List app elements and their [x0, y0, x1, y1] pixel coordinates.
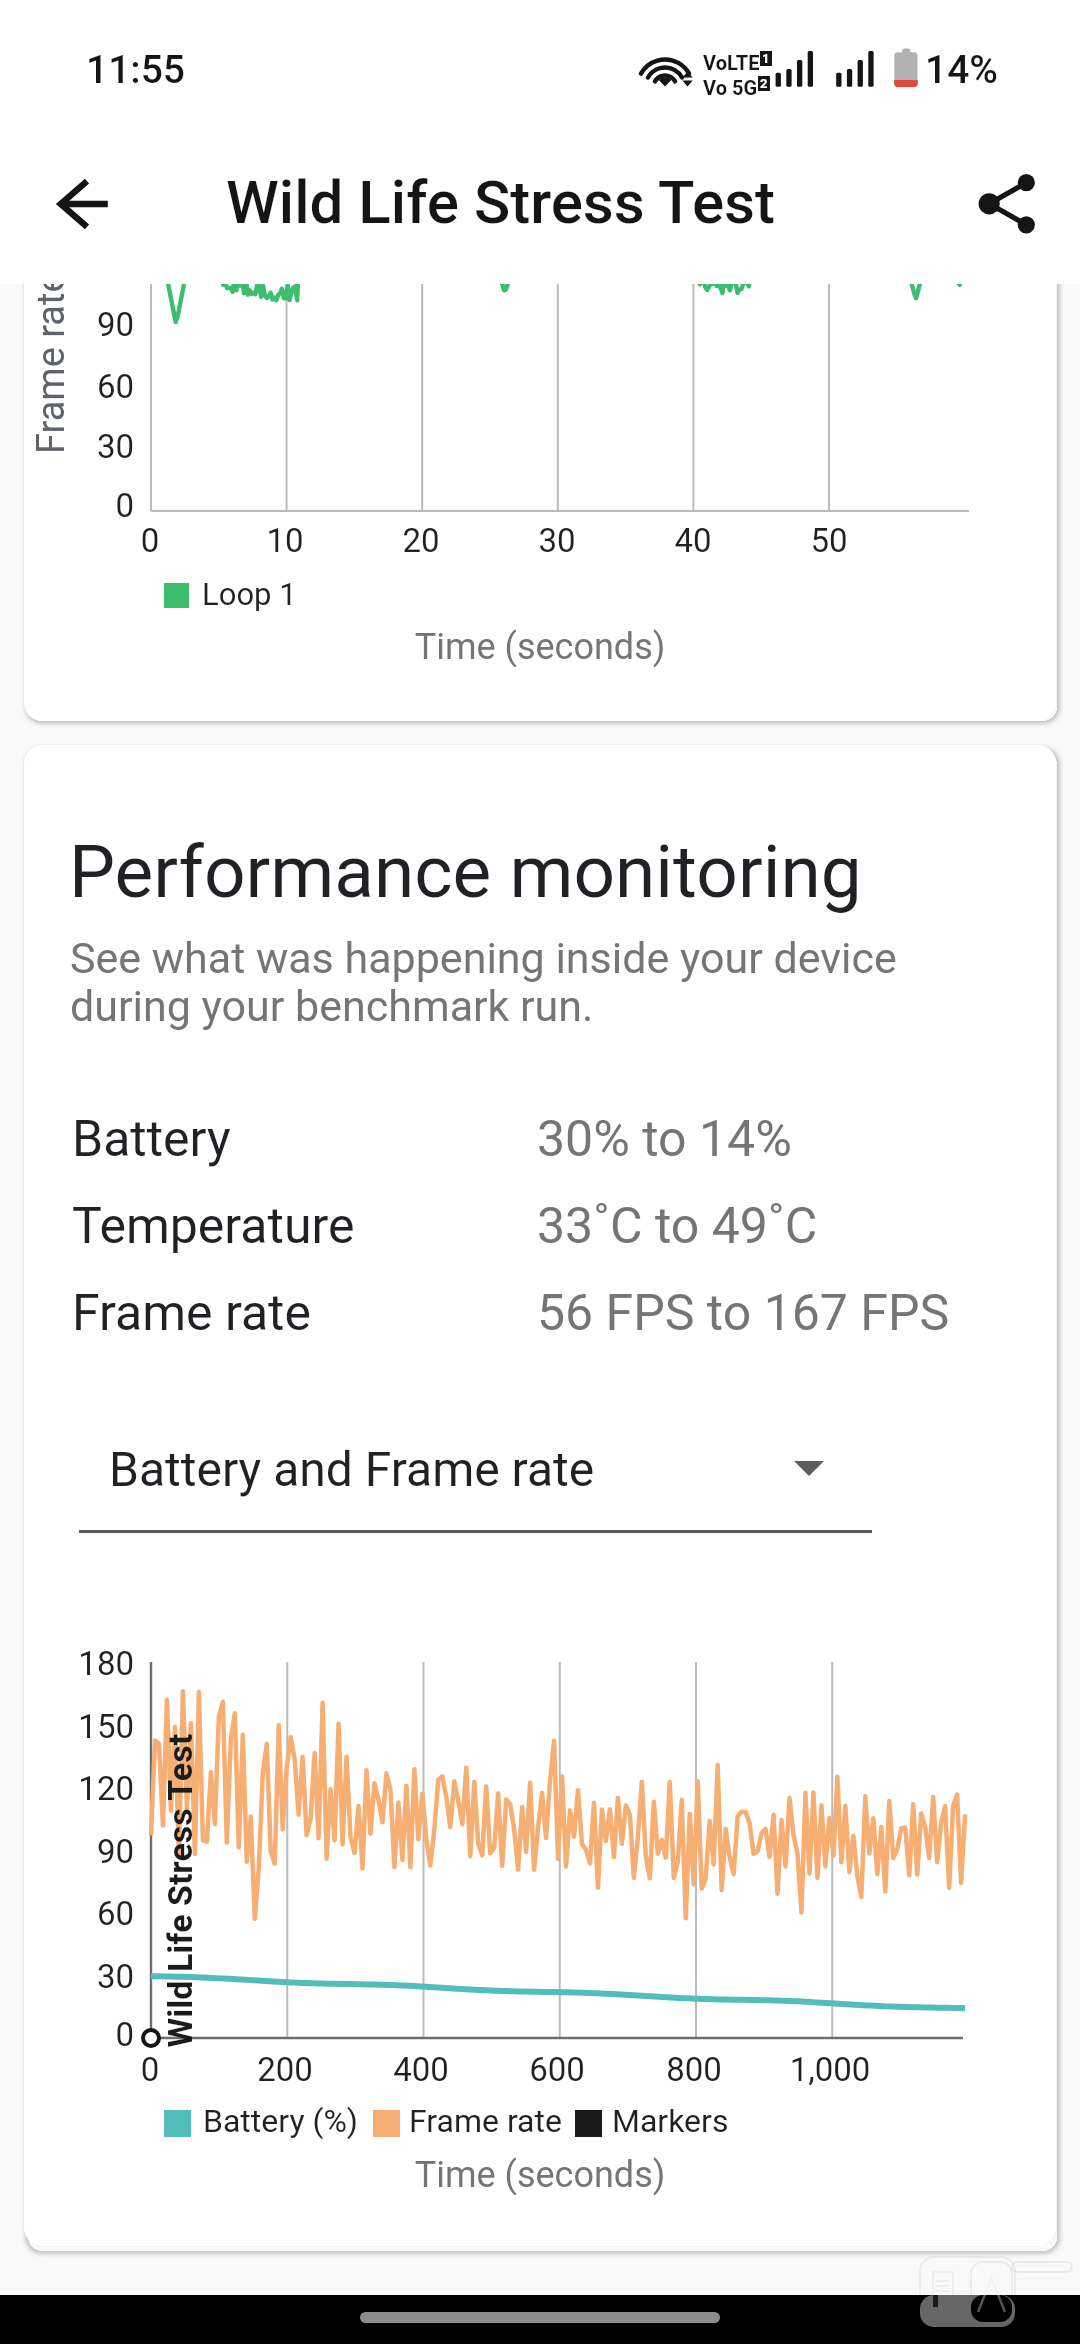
staticText: 20	[24, 521, 821, 560]
staticText: 60	[24, 367, 134, 406]
staticText: Vo 5G	[703, 76, 758, 99]
staticText: Wild Life Stress Test	[226, 167, 776, 237]
staticText: Time (seconds)	[140, 2154, 940, 2196]
staticText: during your benchmark run.	[70, 981, 594, 1031]
staticText: 0	[24, 521, 550, 560]
staticText: 200	[24, 2050, 685, 2089]
staticText: 33˚C to 49˚C	[537, 1197, 818, 1256]
staticText: 2	[760, 76, 768, 91]
staticText: VoLTE	[703, 51, 760, 74]
button[interactable]: Share	[960, 160, 1048, 248]
staticText: Battery	[72, 1110, 231, 1169]
staticText: Battery and Frame rate	[109, 1441, 595, 1497]
staticText: 40	[293, 521, 1056, 560]
staticText: 180	[24, 1644, 134, 1683]
staticText: Frame rate	[409, 2102, 562, 2140]
staticText: Frame rate	[29, 272, 74, 454]
staticText: 150	[24, 1707, 134, 1746]
staticText: 1,000	[430, 2050, 1056, 2089]
staticText: 800	[294, 2050, 1056, 2089]
staticText: 120	[24, 1769, 134, 1808]
staticText: 30% to 14%	[537, 1110, 792, 1169]
button[interactable]: Battery and Frame rate	[79, 1420, 872, 1535]
staticText: 90	[24, 305, 134, 344]
button[interactable]: Back	[40, 160, 128, 248]
staticText: Battery (%)	[203, 2102, 358, 2140]
staticText: Performance monitoring	[69, 829, 862, 915]
staticText: Frame rate	[72, 1284, 311, 1343]
staticText: Time (seconds)	[140, 626, 940, 668]
staticText: 30	[24, 427, 134, 466]
staticText: 1	[762, 51, 770, 66]
staticText: 10	[24, 521, 685, 560]
staticText: 0	[24, 2015, 134, 2054]
staticText: 30	[24, 1957, 134, 1996]
staticText: 90	[24, 1832, 134, 1871]
staticText: 0	[24, 2050, 550, 2089]
staticText: Markers	[612, 2102, 729, 2140]
staticText: 400	[24, 2050, 821, 2089]
staticText: 60	[24, 1894, 134, 1933]
staticText: 14%	[925, 47, 998, 93]
staticText: 30	[157, 521, 957, 560]
staticText: Wild Life Stress Test	[159, 1733, 199, 2047]
staticText: 0	[24, 486, 134, 525]
staticText: Loop 1	[202, 576, 297, 612]
staticText: 50	[429, 521, 1056, 560]
staticText: See what was happening inside your devic…	[70, 933, 897, 983]
staticText: 600	[157, 2050, 957, 2089]
staticText: 11:55	[86, 47, 186, 93]
staticText: Temperature	[72, 1197, 355, 1256]
staticText: 56 FPS to 167 FPS	[537, 1284, 950, 1343]
